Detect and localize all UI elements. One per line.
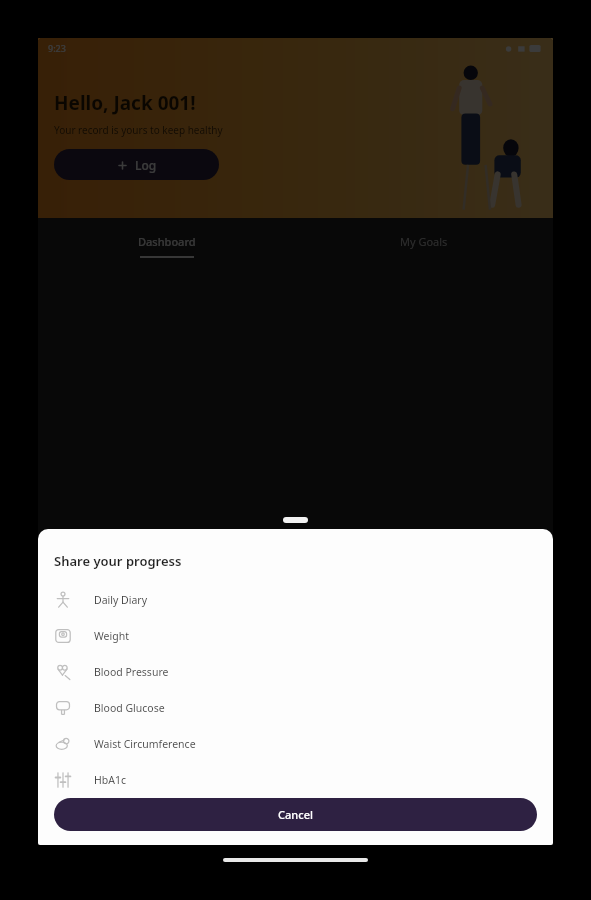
staticText: Log [135, 157, 157, 173]
button[interactable]: HbA1c [38, 762, 553, 798]
staticText: Your record is yours to keep healthy [54, 123, 223, 137]
button[interactable]: Blood Pressure [38, 654, 553, 690]
staticText: Cancel [278, 807, 313, 822]
button[interactable]: Weight [38, 618, 553, 654]
staticText: Dashboard [138, 234, 196, 249]
staticText: Hello, Jack 001! [54, 90, 196, 116]
staticText: Weight [94, 629, 129, 643]
button[interactable]: Dashboard [38, 218, 295, 273]
staticText: 9:23 [48, 42, 66, 54]
button[interactable]: Daily Diary [38, 582, 553, 618]
staticText: Blood Glucose [94, 701, 165, 715]
staticText: HbA1c [94, 773, 126, 787]
staticText: Daily Diary [94, 593, 148, 607]
button[interactable]: Waist Circumference [38, 726, 553, 762]
staticText: My Goals [400, 234, 448, 249]
button[interactable]: Blood Glucose [38, 690, 553, 726]
button[interactable]: Cancel [54, 798, 537, 831]
staticText: Blood Pressure [94, 665, 169, 679]
staticText: Share your progress [54, 552, 182, 570]
button[interactable]: Log [54, 149, 219, 180]
staticText: Waist Circumference [94, 737, 196, 751]
